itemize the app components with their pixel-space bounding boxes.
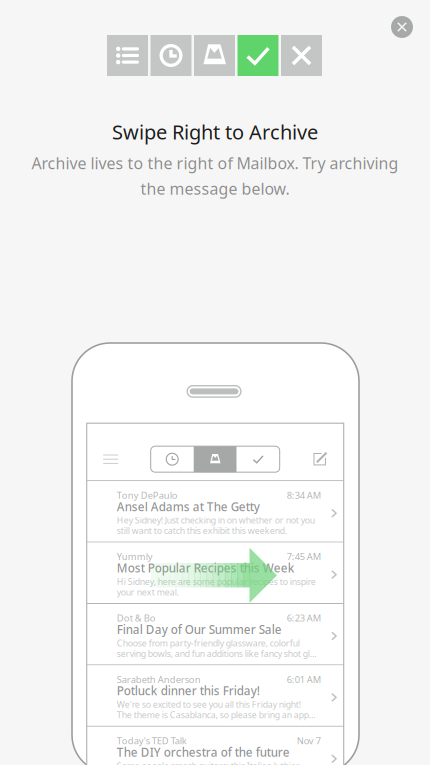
staticText: Some people smash guitars; this Italian … xyxy=(117,760,300,765)
staticText: 6:01 AM xyxy=(287,673,321,686)
button[interactable]: Menu xyxy=(92,438,130,480)
staticText: Today's TED Talk xyxy=(117,734,187,747)
staticText: The theme is Casablanca, so please bring… xyxy=(117,709,316,721)
button[interactable]: Yummly xyxy=(87,543,344,603)
staticText: Most Popular Recipes this Week xyxy=(117,560,295,576)
staticText: Potluck dinner this Friday! xyxy=(117,683,260,699)
button[interactable]: Delete xyxy=(281,35,322,76)
button[interactable]: Archive xyxy=(237,35,278,76)
staticText: Hi Sidney, here are some popular recipes… xyxy=(117,576,316,588)
staticText: serving bowls, and fun additions like fa… xyxy=(117,647,317,659)
staticText: The DIY orchestra of the future xyxy=(117,744,290,760)
button[interactable]: Inbox xyxy=(194,446,237,472)
button[interactable]: Later xyxy=(151,446,194,472)
button[interactable]: Inbox xyxy=(194,35,235,76)
staticText: Archive lives to the right of Mailbox. T… xyxy=(31,152,398,174)
staticText: Swipe Right to Archive xyxy=(112,118,318,145)
button[interactable]: Sarabeth Anderson xyxy=(87,665,344,726)
staticText: Hey Sidney! Just checking in on whether … xyxy=(117,514,315,526)
staticText: 8:34 AM xyxy=(287,489,321,501)
staticText: Sarabeth Anderson xyxy=(117,673,201,686)
button[interactable]: Archive xyxy=(237,446,280,472)
staticText: Nov 7 xyxy=(297,734,321,747)
staticText: We're so excited to see you all this Fri… xyxy=(117,698,301,710)
button[interactable]: Today's TED Talk xyxy=(87,727,344,765)
staticText: Dot & Bo xyxy=(117,611,156,624)
staticText: Choose from party-friendly glassware, co… xyxy=(117,637,300,649)
staticText: 7:45 AM xyxy=(287,550,321,563)
staticText: Yummly xyxy=(117,550,153,563)
button[interactable]: Compose xyxy=(301,438,339,480)
staticText: Ansel Adams at The Getty xyxy=(117,499,260,515)
staticText: the message below. xyxy=(140,178,289,199)
staticText: your next meal. xyxy=(117,586,179,598)
staticText: still want to catch this exhibit this we… xyxy=(117,525,287,537)
button[interactable]: Dot & Bo xyxy=(87,604,344,664)
button[interactable]: Lists xyxy=(107,35,148,76)
button[interactable]: Later xyxy=(150,35,191,76)
staticText: 6:23 AM xyxy=(287,611,321,624)
button[interactable]: Tony DePaulo xyxy=(87,481,344,542)
staticText: Tony DePaulo xyxy=(117,489,178,501)
staticText: Final Day of Our Summer Sale xyxy=(117,621,282,637)
button[interactable]: Close xyxy=(384,9,420,45)
